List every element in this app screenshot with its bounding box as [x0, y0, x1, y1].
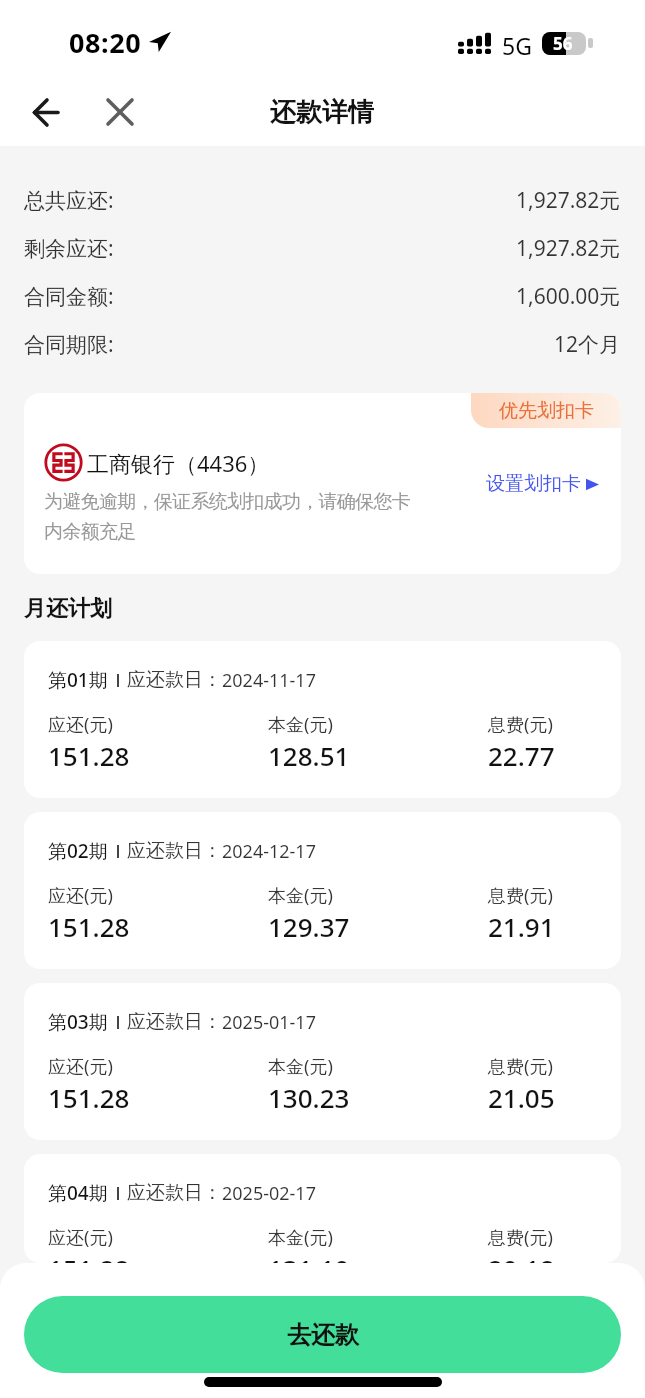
button[interactable]: 第02期 [24, 812, 621, 969]
staticText: 22.77 [488, 738, 555, 773]
staticText: 优先划扣卡 [499, 399, 594, 423]
staticText: 本金(元) [268, 1054, 333, 1079]
button[interactable]: 优先划扣卡 [24, 393, 621, 574]
staticText: 56 [553, 32, 573, 55]
staticText: 本金(元) [268, 1225, 333, 1250]
staticText: 应还(元) [48, 712, 113, 737]
staticText: 130.23 [268, 1080, 350, 1115]
staticText: 第02期 [48, 838, 108, 864]
staticText: 息费(元) [488, 1054, 553, 1079]
staticText: 1,927.82元 [516, 234, 621, 263]
staticText: 151.28 [48, 1080, 130, 1115]
staticText: 应还(元) [48, 883, 113, 908]
staticText: 151.28 [48, 909, 130, 944]
staticText: 1,927.82元 [516, 186, 621, 215]
staticText: 设置划扣卡 [486, 472, 581, 496]
button[interactable]: 第04期 [24, 1154, 621, 1263]
staticText: 应还款日： [127, 1181, 222, 1205]
staticText: 合同金额: [24, 282, 114, 311]
staticText: 本金(元) [268, 883, 333, 908]
staticText: 还款详情 [270, 96, 374, 129]
staticText: 2024-11-17 [222, 668, 316, 693]
staticText: 151.28 [48, 1251, 130, 1263]
staticText: 12个月 [554, 330, 621, 359]
staticText: 月还计划 [24, 595, 112, 623]
staticText: 第03期 [48, 1009, 108, 1035]
staticText: 2025-01-17 [222, 1010, 316, 1035]
staticText: 128.51 [268, 738, 350, 773]
staticText: 本金(元) [268, 712, 333, 737]
staticText: 131.10 [268, 1251, 350, 1263]
staticText: 应还款日： [127, 1010, 222, 1034]
staticText: 5G [502, 30, 532, 61]
staticText: 20.18 [488, 1251, 555, 1263]
staticText: 129.37 [268, 909, 350, 944]
staticText: 2024-12-17 [222, 839, 316, 864]
button[interactable]: Back [21, 88, 69, 136]
staticText: 工商银行（4436） [87, 448, 270, 478]
staticText: 为避免逾期，保证系统划扣成功，请确保您卡 内余额充足 [44, 490, 444, 543]
button[interactable]: 第01期 [24, 641, 621, 798]
staticText: 第04期 [48, 1180, 108, 1206]
button[interactable]: Close [96, 88, 144, 136]
staticText: 息费(元) [488, 883, 553, 908]
staticText: 08:20 [69, 24, 142, 61]
staticText: 剩余应还: [24, 234, 114, 263]
staticText: 151.28 [48, 738, 130, 773]
staticText: 第01期 [48, 667, 108, 693]
staticText: 1,600.00元 [516, 282, 621, 311]
staticText: 21.05 [488, 1080, 555, 1115]
button[interactable]: 第03期 [24, 983, 621, 1140]
staticText: 2025-02-17 [222, 1181, 316, 1206]
button[interactable]: 去还款 [24, 1296, 621, 1373]
staticText: 21.91 [488, 909, 555, 944]
staticText: 应还款日： [127, 839, 222, 863]
button[interactable]: 设置划扣卡 [486, 472, 599, 496]
staticText: 总共应还: [24, 186, 114, 215]
staticText: 应还(元) [48, 1054, 113, 1079]
staticText: 去还款 [287, 1320, 359, 1350]
staticText: 应还款日： [127, 668, 222, 692]
staticText: 合同期限: [24, 330, 114, 359]
staticText: 息费(元) [488, 712, 553, 737]
staticText: 息费(元) [488, 1225, 553, 1250]
staticText: 应还(元) [48, 1225, 113, 1250]
